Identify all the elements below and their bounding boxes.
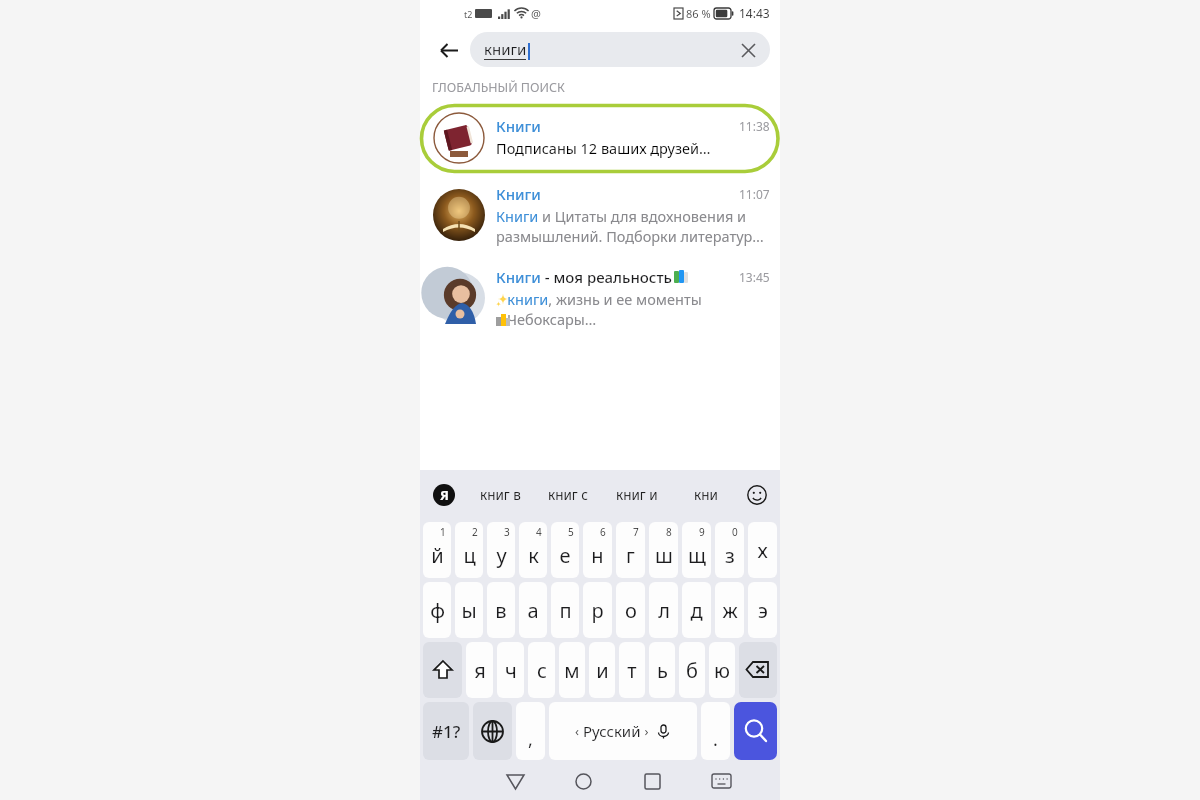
button[interactable]: Symbols bbox=[423, 702, 469, 760]
button[interactable]: 0 bbox=[715, 522, 744, 578]
staticText: Русский bbox=[583, 721, 641, 741]
staticText: м bbox=[564, 657, 580, 684]
button[interactable]: и bbox=[589, 642, 615, 698]
button[interactable]: 7 bbox=[616, 522, 645, 578]
button[interactable]: 4 bbox=[519, 522, 547, 578]
staticText: › bbox=[641, 722, 649, 740]
button[interactable]: Книги - моя реальность bbox=[420, 256, 780, 339]
staticText: Книги bbox=[496, 116, 541, 136]
staticText: щ bbox=[688, 542, 706, 569]
staticText: 8 bbox=[666, 525, 672, 539]
staticText: к bbox=[528, 542, 539, 569]
staticText: п bbox=[559, 597, 572, 624]
staticText: 7 bbox=[633, 525, 639, 539]
staticText: книг с bbox=[548, 486, 588, 504]
staticText: 86 % bbox=[686, 6, 711, 21]
staticText: книг в bbox=[480, 486, 521, 504]
staticText: #1? bbox=[432, 720, 461, 743]
staticText: у bbox=[496, 542, 507, 569]
staticText: ‹ bbox=[575, 722, 583, 740]
button[interactable]: 1 bbox=[423, 522, 451, 578]
staticText: о bbox=[625, 597, 637, 624]
button[interactable]: т bbox=[619, 642, 645, 698]
button[interactable]: книги bbox=[470, 32, 770, 67]
staticText: в bbox=[495, 597, 507, 624]
button[interactable]: Recents bbox=[618, 762, 687, 800]
staticText: книги bbox=[484, 39, 527, 59]
staticText: 0 bbox=[732, 525, 738, 539]
staticText: Подписаны 12 ваших друзей… bbox=[496, 138, 711, 158]
staticText: я bbox=[474, 657, 486, 684]
staticText: ь bbox=[657, 657, 668, 684]
staticText: 4 bbox=[536, 525, 542, 539]
button[interactable]: ь bbox=[649, 642, 675, 698]
button[interactable]: ы bbox=[455, 582, 483, 638]
staticText: 11:38 bbox=[739, 118, 770, 134]
button[interactable]: книг в bbox=[466, 470, 534, 520]
button[interactable]: ю bbox=[709, 642, 735, 698]
button[interactable]: Yandex bbox=[433, 484, 455, 506]
button[interactable]: кни bbox=[671, 470, 740, 520]
button[interactable]: 8 bbox=[649, 522, 678, 578]
button[interactable]: я bbox=[466, 642, 493, 698]
button[interactable]: Back bbox=[481, 762, 549, 800]
button[interactable]: Backspace bbox=[739, 642, 777, 698]
staticText: е bbox=[559, 542, 571, 569]
button[interactable]: 9 bbox=[682, 522, 711, 578]
staticText: размышлений. Подборки литератур… bbox=[496, 226, 764, 246]
button[interactable]: Shift bbox=[423, 642, 462, 698]
button[interactable]: Search bbox=[734, 702, 777, 760]
staticText: 9 bbox=[699, 525, 705, 539]
button[interactable]: Emoji bbox=[744, 482, 770, 508]
button[interactable]: Книги bbox=[420, 101, 780, 173]
staticText: 6 bbox=[600, 525, 606, 539]
button[interactable]: п bbox=[551, 582, 579, 638]
button[interactable]: книг с bbox=[534, 470, 602, 520]
button[interactable]: б bbox=[679, 642, 705, 698]
button[interactable]: л bbox=[649, 582, 678, 638]
button[interactable]: ф bbox=[423, 582, 451, 638]
staticText: 1 bbox=[440, 525, 446, 539]
staticText: книги, жизнь и ее моменты bbox=[496, 289, 702, 309]
button[interactable]: Back bbox=[432, 33, 466, 67]
button[interactable]: 6 bbox=[583, 522, 612, 578]
button[interactable]: Home bbox=[549, 762, 618, 800]
staticText: @ bbox=[531, 6, 541, 21]
staticText: книг и bbox=[616, 486, 658, 504]
button[interactable]: Книги bbox=[420, 173, 780, 256]
staticText: з bbox=[725, 542, 735, 569]
staticText: ц bbox=[463, 542, 476, 569]
staticText: Книги - моя реальность bbox=[496, 267, 672, 287]
staticText: 14:43 bbox=[739, 5, 770, 21]
staticText: а bbox=[527, 597, 539, 624]
staticText: ю bbox=[714, 657, 730, 684]
staticText: t2 bbox=[464, 8, 473, 20]
button[interactable]: а bbox=[519, 582, 547, 638]
button[interactable]: м bbox=[559, 642, 585, 698]
button[interactable]: ч bbox=[497, 642, 524, 698]
button[interactable]: книг и bbox=[602, 470, 671, 520]
staticText: н bbox=[591, 542, 604, 569]
button[interactable]: Hide keyboard bbox=[687, 762, 756, 800]
button[interactable]: э bbox=[748, 582, 777, 638]
button[interactable]: д bbox=[682, 582, 711, 638]
button[interactable]: 5 bbox=[551, 522, 579, 578]
staticText: 3 bbox=[504, 525, 510, 539]
button[interactable]: ж bbox=[715, 582, 744, 638]
button[interactable]: х bbox=[748, 522, 777, 578]
button[interactable]: . bbox=[701, 702, 730, 760]
staticText: кни bbox=[694, 486, 718, 504]
button[interactable]: ‹ bbox=[549, 702, 697, 760]
button[interactable]: 2 bbox=[455, 522, 483, 578]
button[interactable]: в bbox=[487, 582, 515, 638]
staticText: Чебоксары… bbox=[496, 309, 597, 329]
button[interactable]: Clear bbox=[734, 36, 762, 64]
button[interactable]: о bbox=[616, 582, 645, 638]
button[interactable]: Language bbox=[473, 702, 512, 760]
button[interactable]: с bbox=[528, 642, 555, 698]
button[interactable]: р bbox=[583, 582, 612, 638]
staticText: 5 bbox=[568, 525, 574, 539]
staticText: ы bbox=[461, 597, 477, 624]
button[interactable]: , bbox=[516, 702, 545, 760]
button[interactable]: 3 bbox=[487, 522, 515, 578]
